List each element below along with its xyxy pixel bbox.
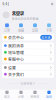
button[interactable]: 关于我们 — [2, 71, 54, 78]
button[interactable]: 卡券 — [42, 23, 56, 32]
staticText: 首页 — [4, 95, 10, 99]
staticText: 我的消息 — [8, 43, 24, 48]
button[interactable]: 收藏 — [14, 23, 28, 32]
staticText: 登录后同步您的数据 — [12, 16, 39, 21]
button[interactable]: 首页 — [0, 91, 14, 99]
button[interactable]: 设置 — [2, 64, 54, 71]
staticText: 设置 — [8, 65, 16, 70]
staticText: 订单 — [4, 28, 10, 32]
button[interactable]: 地址管理 — [2, 49, 54, 56]
staticText: 我的 — [46, 95, 52, 99]
button[interactable]: 足迹 — [28, 23, 42, 32]
button[interactable]: 会员中心 — [2, 34, 54, 41]
button[interactable]: 我的 — [42, 91, 56, 99]
staticText: 已经到底了 — [20, 81, 35, 85]
staticText: 客服中心 — [8, 56, 24, 62]
button[interactable]: 订单 — [0, 23, 14, 32]
button[interactable]: 客服中心 — [2, 56, 54, 62]
button[interactable]: 未登录 — [0, 8, 56, 22]
staticText: 去开通 — [42, 35, 51, 39]
staticText: 分类 — [18, 95, 24, 99]
button[interactable]: 购物车 — [28, 91, 42, 99]
staticText: 会员中心 — [8, 34, 24, 40]
staticText: 收藏 — [18, 28, 24, 32]
staticText: 9:41 — [3, 2, 10, 6]
staticText: 购物车 — [30, 95, 39, 99]
staticText: 关于我们 — [8, 71, 24, 77]
staticText: 卡券 — [46, 28, 52, 32]
button[interactable]: 分类 — [14, 91, 28, 99]
staticText: 地址管理 — [8, 49, 24, 55]
staticText: 足迹 — [32, 28, 38, 32]
staticText: 未登录 — [12, 9, 24, 16]
button[interactable]: 我的消息 — [2, 42, 54, 49]
